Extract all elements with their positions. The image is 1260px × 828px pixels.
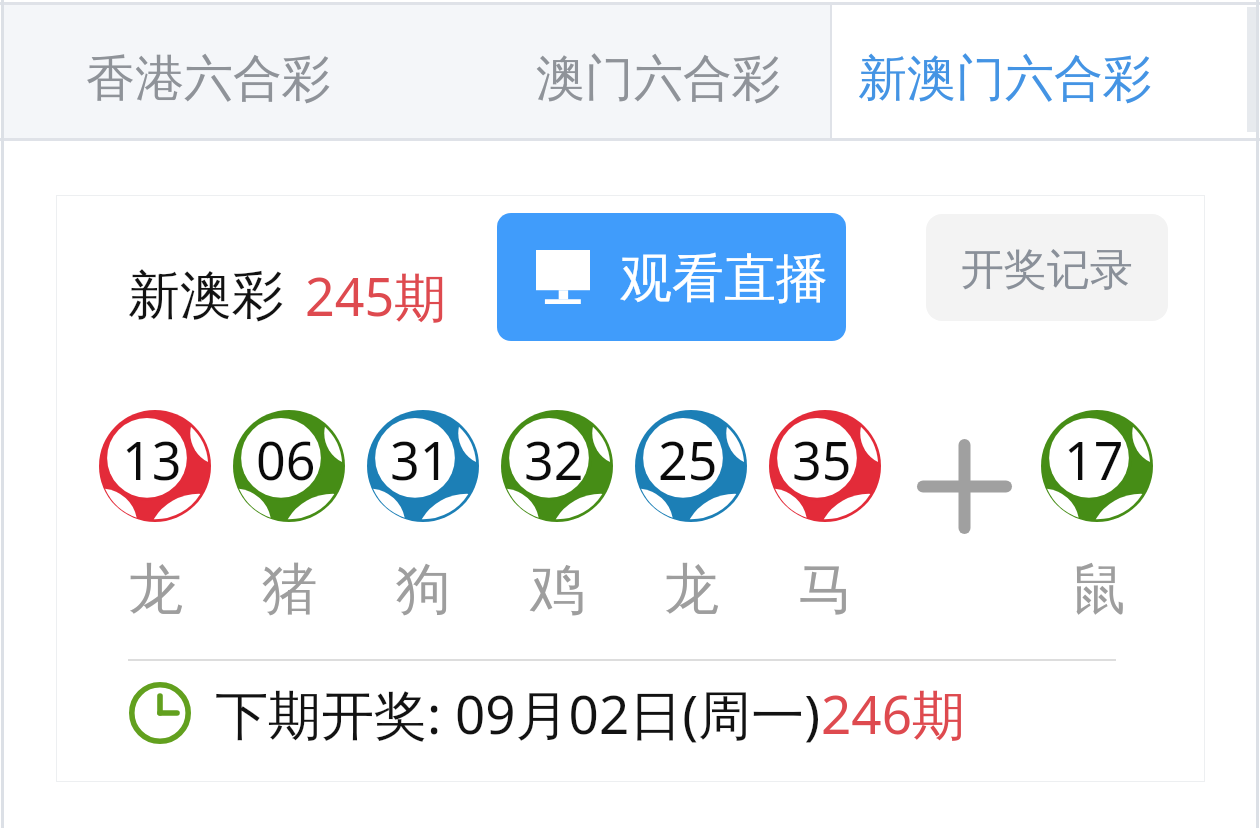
staticText: 龙 bbox=[664, 555, 719, 624]
staticText: 马 bbox=[798, 555, 853, 624]
button[interactable]: 香港六合彩 bbox=[0, 0, 416, 141]
staticText: 鸡 bbox=[530, 555, 585, 624]
staticText: 13 bbox=[122, 424, 182, 495]
staticText: 246期 bbox=[821, 677, 965, 749]
staticText: 开奖记录 bbox=[961, 243, 1133, 297]
staticText: 32 bbox=[524, 424, 584, 495]
staticText: 澳门六合彩 bbox=[536, 48, 781, 110]
staticText: 31 bbox=[390, 424, 450, 495]
staticText: 17 bbox=[1064, 424, 1124, 495]
button[interactable]: Live stream bbox=[497, 213, 846, 341]
staticText: 观看直播 bbox=[620, 246, 828, 312]
staticText: 猪 bbox=[262, 555, 317, 624]
staticText: 下期开奖: 09月02日(周一) bbox=[215, 677, 821, 749]
staticText: 06 bbox=[256, 424, 316, 495]
other: Live stream bbox=[536, 250, 590, 304]
staticText: 新澳彩 bbox=[128, 263, 284, 329]
button[interactable]: 开奖记录 bbox=[926, 214, 1168, 321]
staticText: 狗 bbox=[396, 555, 451, 624]
other: Plus bbox=[917, 439, 1012, 534]
staticText: 香港六合彩 bbox=[86, 48, 331, 110]
staticText: 245期 bbox=[305, 260, 447, 331]
button[interactable]: 新澳门六合彩 bbox=[831, 0, 1178, 141]
staticText: 龙 bbox=[128, 555, 183, 624]
staticText: 鼠 bbox=[1071, 555, 1126, 624]
staticText: 35 bbox=[792, 424, 852, 495]
staticText: 新澳门六合彩 bbox=[858, 48, 1152, 110]
staticText: 25 bbox=[658, 424, 718, 495]
button[interactable]: 澳门六合彩 bbox=[450, 0, 866, 141]
